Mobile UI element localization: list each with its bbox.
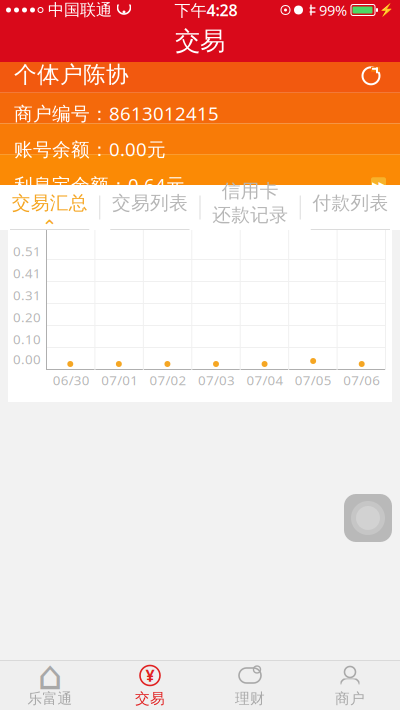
staticText: 0.51 bbox=[13, 242, 41, 260]
button[interactable]: 商户 bbox=[300, 661, 400, 710]
staticText: 交易 bbox=[175, 25, 225, 56]
staticText: ▶▶ bbox=[371, 179, 385, 190]
button[interactable]: 交易列表 bbox=[100, 185, 199, 230]
button[interactable]: ⌂ bbox=[0, 661, 100, 710]
staticText: 乐富通 bbox=[27, 689, 72, 707]
staticText: 0.00 bbox=[13, 350, 41, 368]
staticText: 0.10 bbox=[13, 330, 41, 348]
staticText: 07/04 bbox=[246, 371, 283, 389]
staticText: 还款记录 bbox=[212, 203, 288, 226]
staticText: 07/03 bbox=[198, 371, 235, 389]
staticText: ¥ bbox=[145, 665, 154, 686]
staticText: 账号余额：0.00元 bbox=[14, 137, 166, 161]
staticText: 信用卡 bbox=[222, 180, 279, 202]
button[interactable]: 信用卡 bbox=[200, 185, 300, 230]
staticText: 07/05 bbox=[295, 371, 332, 389]
staticText: 中国联通 bbox=[48, 0, 112, 20]
staticText: 07/02 bbox=[150, 371, 187, 389]
staticText: 06/30 bbox=[53, 371, 90, 389]
staticText: 商户编号：8613012415 bbox=[14, 101, 219, 126]
staticText: 交易汇总 bbox=[12, 191, 88, 214]
button[interactable]: 理财 bbox=[200, 661, 300, 710]
staticText: 理财 bbox=[235, 689, 265, 707]
staticText: 07/06 bbox=[343, 371, 380, 389]
staticText: 07/01 bbox=[101, 371, 138, 389]
staticText: ⌂ bbox=[37, 653, 62, 698]
button[interactable]: 交易汇总 bbox=[0, 185, 99, 230]
staticText: 付款列表 bbox=[312, 191, 388, 214]
staticText: 0.20 bbox=[13, 308, 41, 326]
staticText: ⚡ bbox=[379, 3, 394, 17]
staticText: 利息宝余额：0.64元 bbox=[14, 172, 185, 197]
button[interactable]: 刷新 bbox=[356, 61, 386, 91]
staticText: 交易 bbox=[135, 689, 165, 707]
button[interactable]: 付款列表 bbox=[301, 185, 400, 230]
staticText: 0.41 bbox=[13, 264, 41, 282]
button[interactable]: ¥ bbox=[100, 661, 200, 710]
staticText: 交易列表 bbox=[112, 191, 188, 214]
staticText: 99% bbox=[319, 0, 347, 20]
staticText: 下午4:28 bbox=[174, 0, 237, 21]
staticText: 个体户陈协 bbox=[14, 61, 129, 89]
staticText: 0.31 bbox=[13, 286, 41, 304]
staticText: ⌃ bbox=[42, 216, 58, 238]
button[interactable]: 利息宝详情 bbox=[371, 177, 386, 192]
staticText: 商户 bbox=[335, 689, 365, 707]
